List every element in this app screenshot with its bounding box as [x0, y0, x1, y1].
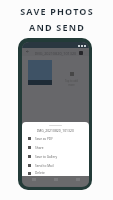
- staticText: Share: [35, 146, 44, 150]
- staticText: Save as PDF: [35, 137, 53, 141]
- button[interactable]: Delete: [22, 170, 89, 176]
- staticText: IMG_20210820_101320: [37, 128, 74, 133]
- button[interactable]: More options: [79, 51, 83, 55]
- staticText: AND SEND: [29, 21, 85, 33]
- button[interactable]: Share: [22, 143, 89, 152]
- button[interactable]: Save as PDF: [22, 134, 89, 143]
- staticText: SAVE PHOTOS: [20, 5, 94, 17]
- button[interactable]: Save to Gallery: [22, 152, 89, 161]
- button[interactable]: Back: [26, 50, 29, 53]
- button[interactable]: Send to Mail: [22, 161, 89, 170]
- staticText: Tap to add more: [62, 79, 81, 87]
- staticText: Send to Mail: [35, 164, 54, 168]
- staticText: IMG_20210820_101320: [35, 51, 77, 56]
- staticText: Save to Gallery: [35, 155, 58, 159]
- button[interactable]: Tap to add more: [62, 72, 81, 87]
- staticText: Delete: [35, 171, 45, 175]
- button[interactable]: [28, 60, 52, 85]
